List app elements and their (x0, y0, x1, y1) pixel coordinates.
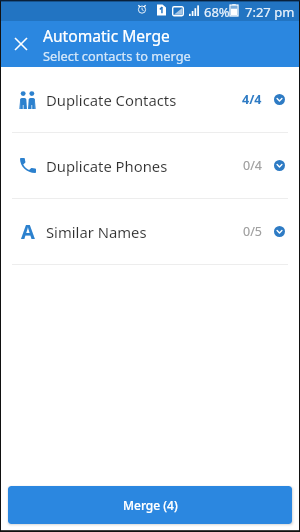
staticText: Automatic Merge (43, 25, 170, 46)
staticText: Similar Names (46, 222, 147, 242)
button[interactable]: Expand (274, 226, 285, 237)
staticText: 68% (204, 3, 230, 21)
staticText: Duplicate Phones (46, 156, 168, 176)
button[interactable]: Duplicate Contacts (0, 67, 300, 132)
button[interactable]: Duplicate Phones (0, 133, 300, 198)
staticText: 4/4 (242, 91, 262, 108)
staticText: 7:27 pm (245, 3, 295, 21)
button[interactable]: Merge (4) (8, 486, 292, 524)
button[interactable]: Expand (274, 160, 285, 171)
button[interactable]: Close (0, 23, 42, 65)
staticText: 0/4 (243, 157, 262, 174)
staticText: Duplicate Contacts (46, 90, 177, 110)
staticText: Merge (4) (123, 497, 178, 513)
button[interactable]: Expand (274, 94, 285, 105)
staticText: A (21, 218, 35, 245)
staticText: 0/5 (243, 223, 262, 240)
button[interactable]: A (0, 199, 300, 264)
staticText: Select contacts to merge (43, 47, 191, 64)
